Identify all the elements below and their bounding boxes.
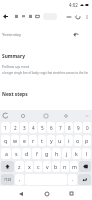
button[interactable]: Undo: [65, 13, 72, 20]
staticText: 5: [41, 125, 44, 131]
staticText: 0: [86, 125, 89, 131]
staticText: ?123: [4, 177, 12, 182]
staticText: l: [86, 150, 88, 157]
button[interactable]: Shift: [1, 161, 14, 172]
staticText: q: [4, 137, 8, 144]
staticText: 2: [14, 125, 17, 131]
staticText: .: [72, 176, 74, 183]
staticText: s: [15, 150, 18, 157]
button[interactable]: k: [72, 148, 81, 159]
staticText: i: [68, 137, 70, 144]
staticText: 7: [59, 125, 62, 131]
staticText: m: [72, 163, 77, 170]
button[interactable]: 2: [11, 122, 19, 133]
button[interactable]: d: [22, 148, 31, 159]
button[interactable]: 7: [56, 122, 64, 133]
button[interactable]: f: [32, 148, 41, 159]
button[interactable]: Stickers: [20, 113, 26, 119]
button[interactable]: 0: [83, 122, 91, 133]
button[interactable]: Text style: [43, 13, 57, 20]
button[interactable]: Italic: [20, 13, 26, 19]
staticText: h: [55, 150, 59, 157]
button[interactable]: c: [34, 161, 42, 172]
button[interactable]: w: [11, 135, 19, 146]
staticText: y: [50, 137, 53, 144]
button[interactable]: Enter: [78, 174, 91, 185]
button[interactable]: Back: [1, 12, 10, 21]
button[interactable]: More options: [83, 13, 90, 20]
button[interactable]: 4: [29, 122, 37, 133]
button[interactable]: Google: [2, 112, 9, 119]
button[interactable]: o: [74, 135, 82, 146]
staticText: g: [45, 150, 49, 157]
staticText: n: [63, 163, 67, 170]
staticText: b: [54, 163, 58, 170]
staticText: e: [23, 137, 26, 144]
button[interactable]: Backspace: [79, 161, 91, 172]
button[interactable]: m: [70, 161, 78, 172]
staticText: k: [75, 150, 78, 157]
button[interactable]: l: [82, 148, 91, 159]
staticText: 1: [4, 125, 7, 131]
staticText: 3: [23, 125, 26, 131]
button[interactable]: Home: [41, 188, 52, 199]
staticText: z: [18, 163, 21, 170]
button[interactable]: 6: [47, 122, 55, 133]
button[interactable]: Recents: [66, 188, 77, 199]
button[interactable]: y: [47, 135, 55, 146]
button[interactable]: v: [43, 161, 51, 172]
button[interactable]: 5: [38, 122, 46, 133]
button[interactable]: j: [62, 148, 71, 159]
button[interactable]: 1: [1, 122, 10, 133]
button[interactable]: e: [20, 135, 28, 146]
button[interactable]: More: [84, 113, 90, 119]
staticText: a: [5, 150, 8, 157]
staticText: 8: [68, 125, 71, 131]
button[interactable]: i: [65, 135, 73, 146]
button[interactable]: 3: [20, 122, 28, 133]
button[interactable]: Reply: [72, 31, 80, 39]
button[interactable]: s: [12, 148, 21, 159]
button[interactable]: Back: [15, 188, 26, 199]
staticText: 9: [77, 125, 80, 131]
button[interactable]: Insert image: [34, 13, 40, 19]
button[interactable]: Bulleted list: [27, 13, 33, 19]
staticText: Summary: [2, 53, 25, 60]
button[interactable]: a: [1, 148, 11, 159]
button[interactable]: h: [52, 148, 61, 159]
staticText: ,: [19, 176, 21, 183]
button[interactable]: x: [25, 161, 33, 172]
staticText: d: [25, 150, 29, 157]
button[interactable]: .: [68, 174, 77, 185]
staticText: u: [58, 137, 62, 144]
button[interactable]: Clipboard: [43, 113, 49, 119]
staticText: j: [66, 150, 68, 157]
button[interactable]: 9: [74, 122, 82, 133]
button[interactable]: 8: [65, 122, 73, 133]
button[interactable]: ?123: [1, 174, 14, 185]
staticText: 6: [50, 125, 53, 131]
button[interactable]: u: [56, 135, 64, 146]
button[interactable]: q: [1, 135, 10, 146]
button[interactable]: g: [42, 148, 51, 159]
button[interactable]: ,: [15, 174, 24, 185]
button[interactable]: b: [52, 161, 60, 172]
staticText: Yesterday: [2, 32, 22, 38]
staticText: o: [76, 137, 80, 144]
button[interactable]: Bold: [13, 13, 19, 19]
staticText: f: [36, 150, 38, 157]
button[interactable]: Settings: [63, 113, 69, 119]
button[interactable]: p: [83, 135, 91, 146]
staticText: 4:02: [69, 2, 78, 8]
staticText: c: [37, 163, 40, 170]
staticText: p: [85, 137, 89, 144]
button[interactable]: r: [29, 135, 37, 146]
staticText: r: [32, 137, 35, 144]
staticText: 4: [32, 125, 35, 131]
button[interactable]: z: [15, 161, 24, 172]
staticText: t: [41, 137, 43, 144]
button[interactable]: t: [38, 135, 46, 146]
button[interactable]: Redo: [74, 13, 81, 20]
button[interactable]: n: [61, 161, 69, 172]
